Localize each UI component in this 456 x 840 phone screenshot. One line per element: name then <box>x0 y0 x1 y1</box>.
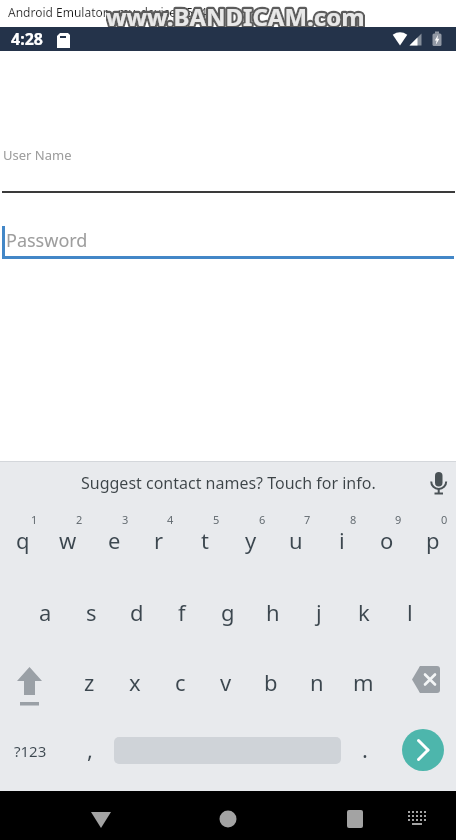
button[interactable]: a <box>22 577 68 647</box>
staticText: , <box>87 734 93 764</box>
staticText: ?123 <box>14 741 47 761</box>
staticText: 8 <box>350 512 357 526</box>
staticText: h <box>266 597 280 627</box>
staticText: z <box>84 667 95 697</box>
button[interactable]: n <box>294 647 340 717</box>
staticText: 9 <box>395 512 402 526</box>
staticText: p <box>426 525 440 555</box>
staticText: g <box>221 597 235 627</box>
button[interactable] <box>402 803 434 835</box>
button[interactable]: g <box>205 577 251 647</box>
staticText: 4 <box>167 512 174 526</box>
staticText: 6 <box>259 512 266 526</box>
staticText: t <box>201 525 209 555</box>
button[interactable]: y <box>228 505 274 575</box>
staticText: 7 <box>304 512 311 526</box>
button[interactable]: s <box>68 577 114 647</box>
staticText: f <box>178 597 186 627</box>
staticText: k <box>358 597 370 627</box>
staticText: r <box>154 525 164 555</box>
button[interactable]: v <box>203 647 249 717</box>
button[interactable] <box>427 466 451 500</box>
button[interactable]: x <box>112 647 158 717</box>
staticText: a <box>39 597 52 627</box>
button[interactable] <box>339 803 371 835</box>
button[interactable]: User Name <box>3 146 203 164</box>
button[interactable]: d <box>114 577 160 647</box>
staticText: s <box>86 597 97 627</box>
button[interactable] <box>212 803 244 835</box>
button[interactable]: p <box>410 505 456 575</box>
button[interactable]: b <box>248 647 294 717</box>
staticText: 1 <box>31 512 38 526</box>
staticText: y <box>245 525 257 555</box>
staticText: 3 <box>122 512 129 526</box>
staticText: . <box>362 734 368 764</box>
button[interactable]: l <box>387 577 433 647</box>
staticText: www.BANDICAM.com <box>106 0 365 29</box>
staticText: j <box>316 597 322 627</box>
button[interactable] <box>402 729 444 771</box>
staticText: m <box>353 667 374 697</box>
staticText: b <box>264 667 278 697</box>
staticText: Password <box>6 228 88 252</box>
button[interactable]: c <box>157 647 203 717</box>
staticText: Suggest contact names? Touch for info. <box>81 472 376 494</box>
button[interactable]: ?123 <box>8 717 52 785</box>
staticText: e <box>108 525 121 555</box>
staticText: c <box>175 667 186 697</box>
staticText: d <box>130 597 144 627</box>
button[interactable]: e <box>91 505 137 575</box>
button[interactable] <box>8 655 56 711</box>
staticText: x <box>129 667 141 697</box>
staticText: u <box>289 525 303 555</box>
staticText: o <box>380 525 394 555</box>
button[interactable]: j <box>296 577 342 647</box>
button[interactable]: i <box>319 505 365 575</box>
staticText: Android Emulator - my_device:5554 <box>8 4 207 20</box>
button[interactable]: . <box>343 715 387 783</box>
button[interactable]: Password <box>6 228 206 252</box>
staticText: 4:28 <box>11 28 43 50</box>
button[interactable]: r <box>136 505 182 575</box>
staticText: w <box>59 525 77 555</box>
button[interactable] <box>404 655 448 701</box>
staticText: v <box>220 667 232 697</box>
staticText: 5 <box>213 512 220 526</box>
staticText: www.BANDICAM.com <box>106 0 365 29</box>
button[interactable] <box>85 803 117 835</box>
button[interactable]: z <box>66 647 112 717</box>
button[interactable]: t <box>182 505 228 575</box>
button[interactable]: k <box>341 577 387 647</box>
button[interactable]: Suggest contact names? Touch for info. <box>40 461 416 505</box>
button[interactable]: u <box>273 505 319 575</box>
button[interactable]: w <box>45 505 91 575</box>
staticText: i <box>339 525 345 555</box>
staticText: n <box>310 667 324 697</box>
button[interactable]: f <box>159 577 205 647</box>
button[interactable]: o <box>364 505 410 575</box>
button[interactable]: h <box>250 577 296 647</box>
button[interactable]: , <box>68 715 112 783</box>
staticText: 0 <box>441 512 448 526</box>
button[interactable]: q <box>0 505 46 575</box>
button[interactable]: m <box>340 647 386 717</box>
staticText: 2 <box>76 512 83 526</box>
staticText: q <box>16 525 30 555</box>
staticText: l <box>407 597 413 627</box>
staticText: User Name <box>3 146 72 164</box>
